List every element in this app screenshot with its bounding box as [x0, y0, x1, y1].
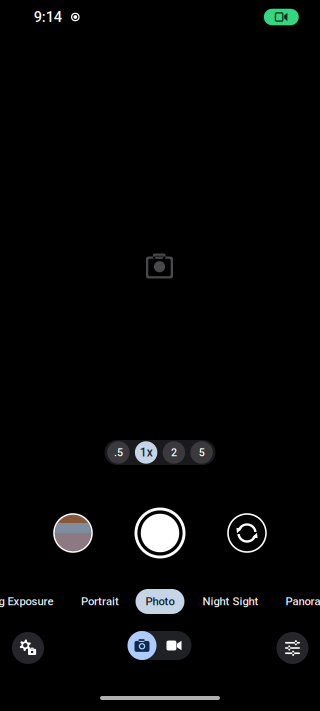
button[interactable]: Camera settings	[12, 632, 44, 664]
button[interactable]: Panorama	[285, 589, 320, 614]
button[interactable]: Take photo	[134, 507, 185, 558]
staticText: Portrait	[81, 595, 119, 608]
staticText: 5	[199, 446, 205, 459]
button[interactable]: Long Exposure	[0, 589, 53, 614]
staticText: Photo	[145, 595, 174, 608]
staticText: .5	[114, 446, 123, 459]
staticText: 9:14	[34, 8, 62, 26]
button[interactable]: Photo	[135, 589, 184, 614]
button[interactable]: 5	[188, 440, 216, 465]
staticText: Panorama	[285, 595, 320, 608]
button[interactable]: Portrait	[81, 589, 119, 614]
button[interactable]: Photo or video mode	[127, 631, 191, 660]
staticText: 1x	[140, 445, 153, 460]
staticText: Night Sight	[202, 595, 258, 608]
button[interactable]: Adjust settings	[276, 632, 308, 664]
button[interactable]: Switch camera	[227, 513, 266, 552]
button[interactable]: Gallery	[53, 513, 92, 552]
button[interactable]: 2	[160, 440, 188, 465]
staticText: Long Exposure	[0, 595, 53, 608]
button[interactable]: Night Sight	[202, 589, 258, 614]
button[interactable]: 1x	[132, 440, 160, 465]
button[interactable]: .5	[104, 440, 132, 465]
staticText: 2	[171, 446, 177, 459]
